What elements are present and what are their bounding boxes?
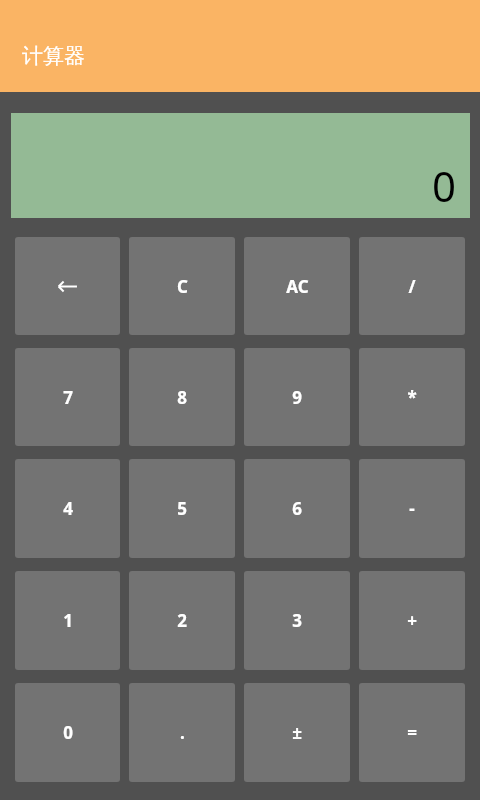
button[interactable]: 9 bbox=[244, 348, 350, 446]
button[interactable]: 2 bbox=[129, 571, 235, 670]
button[interactable]: / bbox=[359, 237, 465, 335]
button[interactable]: 3 bbox=[244, 571, 350, 670]
button[interactable]: . bbox=[129, 683, 235, 782]
staticText: . bbox=[180, 721, 185, 744]
staticText: 9 bbox=[292, 386, 302, 409]
button[interactable]: 7 bbox=[15, 348, 120, 446]
button[interactable]: + bbox=[359, 571, 465, 670]
staticText: = bbox=[407, 721, 417, 744]
button[interactable]: AC bbox=[244, 237, 350, 335]
staticText: 1 bbox=[63, 609, 73, 632]
staticText: AC bbox=[286, 275, 309, 298]
button[interactable]: 0 bbox=[15, 683, 120, 782]
staticText: 0 bbox=[432, 157, 457, 214]
button[interactable]: 5 bbox=[129, 459, 235, 558]
staticText: - bbox=[409, 497, 415, 520]
button[interactable]: 6 bbox=[244, 459, 350, 558]
staticText: + bbox=[407, 609, 417, 632]
button[interactable]: Backspace bbox=[15, 237, 120, 335]
staticText: * bbox=[407, 386, 417, 409]
button[interactable]: 1 bbox=[15, 571, 120, 670]
button[interactable]: 4 bbox=[15, 459, 120, 558]
staticText: 5 bbox=[177, 497, 187, 520]
staticText: 8 bbox=[177, 386, 187, 409]
staticText: 2 bbox=[177, 609, 187, 632]
button[interactable]: - bbox=[359, 459, 465, 558]
button[interactable]: C bbox=[129, 237, 235, 335]
staticText: / bbox=[408, 275, 416, 298]
staticText: 计算器 bbox=[22, 43, 85, 69]
staticText: 3 bbox=[292, 609, 302, 632]
staticText: C bbox=[177, 275, 188, 298]
staticText: 0 bbox=[63, 721, 73, 744]
button[interactable]: ± bbox=[244, 683, 350, 782]
button[interactable]: * bbox=[359, 348, 465, 446]
staticText: 4 bbox=[63, 497, 73, 520]
button[interactable]: = bbox=[359, 683, 465, 782]
staticText: ± bbox=[292, 721, 302, 744]
staticText: 7 bbox=[63, 386, 73, 409]
button[interactable]: 8 bbox=[129, 348, 235, 446]
staticText: 6 bbox=[292, 497, 302, 520]
